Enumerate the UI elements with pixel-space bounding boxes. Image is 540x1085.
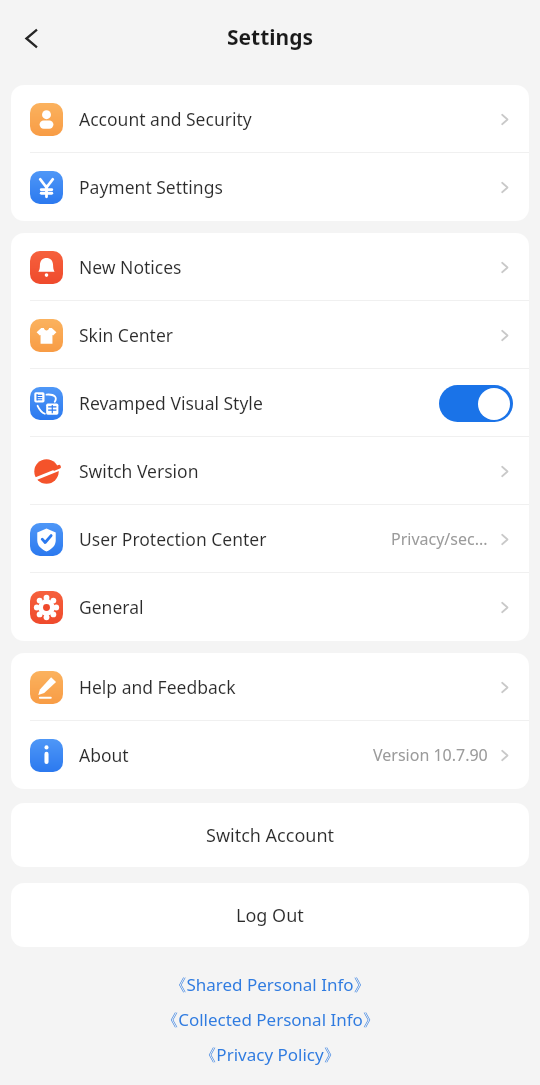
staticText: 《Collected Personal Info》 <box>161 1008 380 1031</box>
button[interactable]: General <box>11 573 529 641</box>
staticText: Revamped Visual Style <box>79 391 263 415</box>
staticText: 《Shared Personal Info》 <box>169 973 371 996</box>
staticText: Skin Center <box>79 323 173 347</box>
staticText: Help and Feedback <box>79 675 236 699</box>
button[interactable]: Log Out <box>11 883 529 947</box>
staticText: Settings <box>227 23 314 52</box>
button[interactable]: User Protection Center <box>11 505 529 573</box>
button[interactable]: Revamped Visual Style <box>11 369 529 437</box>
staticText: Account and Security <box>79 107 252 131</box>
staticText: General <box>79 595 144 619</box>
button[interactable]: 《Privacy Policy》 <box>0 1043 540 1066</box>
button[interactable]: Revamped Visual Style toggle, on <box>439 385 513 422</box>
button[interactable]: Help and Feedback <box>11 653 529 721</box>
button[interactable]: Account and Security <box>11 85 529 153</box>
staticText: 《Privacy Policy》 <box>199 1043 341 1066</box>
button[interactable]: 《Shared Personal Info》 <box>0 973 540 996</box>
staticText: User Protection Center <box>79 527 267 551</box>
staticText: Log Out <box>236 903 304 928</box>
staticText: New Notices <box>79 255 182 279</box>
staticText: Switch Account <box>206 823 335 848</box>
button[interactable]: Payment Settings <box>11 153 529 221</box>
staticText: Privacy/sec... <box>391 528 488 550</box>
staticText: Switch Version <box>79 459 199 483</box>
staticText: Payment Settings <box>79 175 223 199</box>
button[interactable]: 《Collected Personal Info》 <box>0 1008 540 1031</box>
button[interactable]: About <box>11 721 529 789</box>
button[interactable]: Back <box>9 16 53 60</box>
staticText: About <box>79 743 129 767</box>
button[interactable]: New Notices <box>11 233 529 301</box>
button[interactable]: Skin Center <box>11 301 529 369</box>
button[interactable]: Switch Account <box>11 803 529 867</box>
button[interactable]: Switch Version <box>11 437 529 505</box>
staticText: Version 10.7.90 <box>373 744 488 766</box>
